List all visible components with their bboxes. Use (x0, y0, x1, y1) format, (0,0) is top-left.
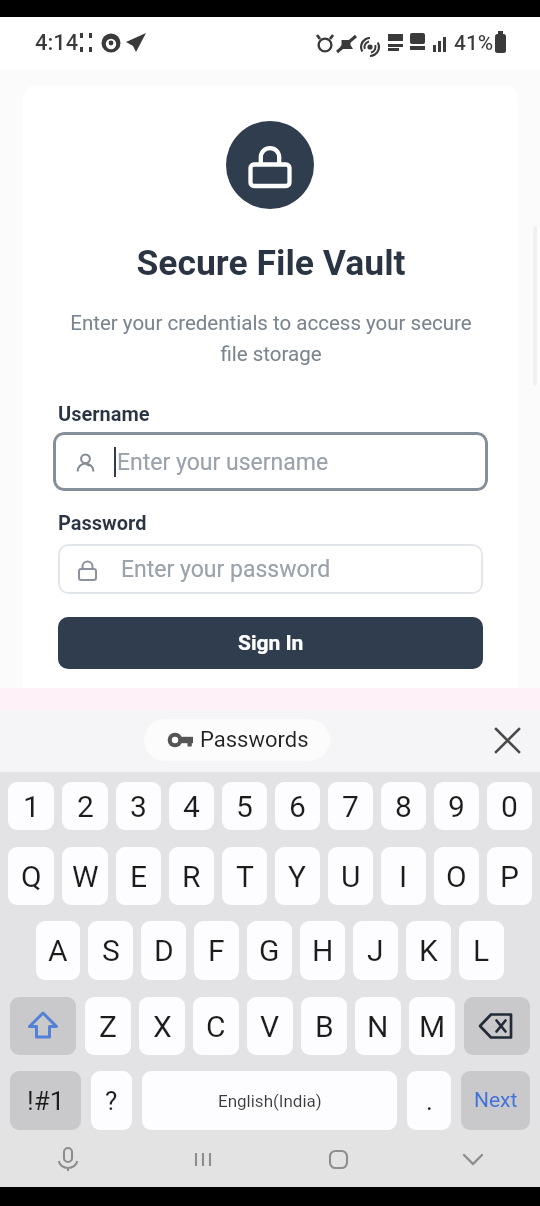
staticText: Q (21, 859, 42, 894)
staticText: 9 (448, 789, 465, 824)
button[interactable]: X (139, 997, 185, 1055)
button[interactable]: O (434, 847, 479, 905)
staticText: Enter your credentials to access your se… (66, 311, 476, 366)
button[interactable]: 2 (62, 782, 108, 830)
button[interactable]: R (169, 847, 214, 905)
button[interactable]: 6 (275, 782, 320, 830)
staticText: S (102, 933, 120, 968)
staticText: J (367, 933, 384, 968)
button[interactable]: N (355, 997, 401, 1055)
button[interactable]: Y (275, 847, 320, 905)
staticText: N (367, 1009, 389, 1044)
staticText: Z (99, 1009, 117, 1044)
staticText: Enter your username (117, 449, 329, 476)
button[interactable]: A (36, 921, 80, 980)
button[interactable]: 4 (169, 782, 214, 830)
button[interactable]: B (301, 997, 347, 1055)
button[interactable]: F (194, 921, 239, 980)
button[interactable]: V (247, 997, 293, 1055)
button[interactable]: W (62, 847, 108, 905)
staticText: Password (58, 511, 147, 534)
button[interactable]: . (407, 1071, 451, 1130)
staticText: G (259, 933, 280, 968)
staticText: R (182, 859, 201, 894)
staticText: Next (474, 1088, 518, 1113)
button[interactable]: S (88, 921, 133, 980)
button[interactable]: K (406, 921, 451, 980)
staticText: B (315, 1009, 334, 1044)
button[interactable]: D (141, 921, 186, 980)
button[interactable]: Passwords (144, 719, 330, 761)
staticText: Secure File Vault (136, 242, 406, 284)
staticText: O (446, 859, 467, 894)
staticText: !#1 (27, 1086, 65, 1116)
staticText: ? (105, 1086, 118, 1116)
button[interactable]: English(India) (142, 1071, 397, 1130)
button[interactable]: Recent apps (135, 1131, 270, 1187)
staticText: E (130, 859, 148, 894)
button[interactable]: Sign In (58, 617, 483, 669)
button[interactable]: H (300, 921, 345, 980)
staticText: Enter your password (121, 556, 331, 583)
staticText: 0 (501, 789, 518, 824)
staticText: 6 (289, 789, 306, 824)
button[interactable]: Home (270, 1131, 405, 1187)
staticText: 5 (236, 789, 253, 824)
button[interactable]: Shift (10, 997, 76, 1055)
button[interactable]: 9 (434, 782, 479, 830)
button[interactable]: Next (461, 1071, 530, 1130)
button[interactable]: Hide keyboard (405, 1131, 540, 1187)
staticText: W (72, 859, 99, 894)
staticText: Username (58, 402, 150, 425)
staticText: English(India) (218, 1091, 322, 1111)
button[interactable]: E (116, 847, 161, 905)
button[interactable]: U (328, 847, 373, 905)
button[interactable]: M (409, 997, 455, 1055)
button[interactable]: I (381, 847, 426, 905)
button[interactable]: T (222, 847, 267, 905)
button[interactable]: L (459, 921, 504, 980)
button[interactable]: J (353, 921, 398, 980)
button[interactable]: Close suggestions (484, 717, 530, 763)
button[interactable]: !#1 (10, 1071, 81, 1130)
button[interactable]: Enter your username (53, 432, 488, 491)
staticText: D (154, 933, 174, 968)
button[interactable]: Q (8, 847, 54, 905)
button[interactable]: Z (85, 997, 131, 1055)
button[interactable]: 8 (381, 782, 426, 830)
staticText: 2 (77, 789, 94, 824)
staticText: Y (288, 859, 307, 894)
staticText: 41% (454, 31, 494, 56)
button[interactable]: ? (91, 1071, 132, 1130)
staticText: L (473, 933, 490, 968)
button[interactable]: G (247, 921, 292, 980)
staticText: I (399, 859, 408, 894)
staticText: V (260, 1009, 280, 1044)
button[interactable]: Backspace (464, 997, 530, 1055)
button[interactable]: Voice input (0, 1131, 135, 1187)
staticText: K (419, 933, 438, 968)
button[interactable]: C (193, 997, 239, 1055)
button[interactable]: 3 (116, 782, 161, 830)
staticText: 3 (130, 789, 147, 824)
staticText: C (206, 1009, 226, 1044)
staticText: F (208, 933, 225, 968)
button[interactable]: P (487, 847, 532, 905)
staticText: T (236, 859, 254, 894)
staticText: 4 (183, 789, 200, 824)
staticText: A (48, 933, 68, 968)
staticText: U (341, 859, 361, 894)
button[interactable]: Enter your password (58, 544, 483, 594)
button[interactable]: 5 (222, 782, 267, 830)
button[interactable]: 1 (8, 782, 54, 830)
staticText: 7 (342, 789, 359, 824)
staticText: H (312, 933, 334, 968)
staticText: X (153, 1009, 172, 1044)
staticText: . (426, 1086, 433, 1116)
staticText: Sign In (238, 631, 304, 656)
staticText: P (500, 859, 519, 894)
staticText: 4:14 (35, 30, 79, 56)
button[interactable]: 7 (328, 782, 373, 830)
staticText: Passwords (200, 727, 309, 753)
button[interactable]: 0 (487, 782, 532, 830)
